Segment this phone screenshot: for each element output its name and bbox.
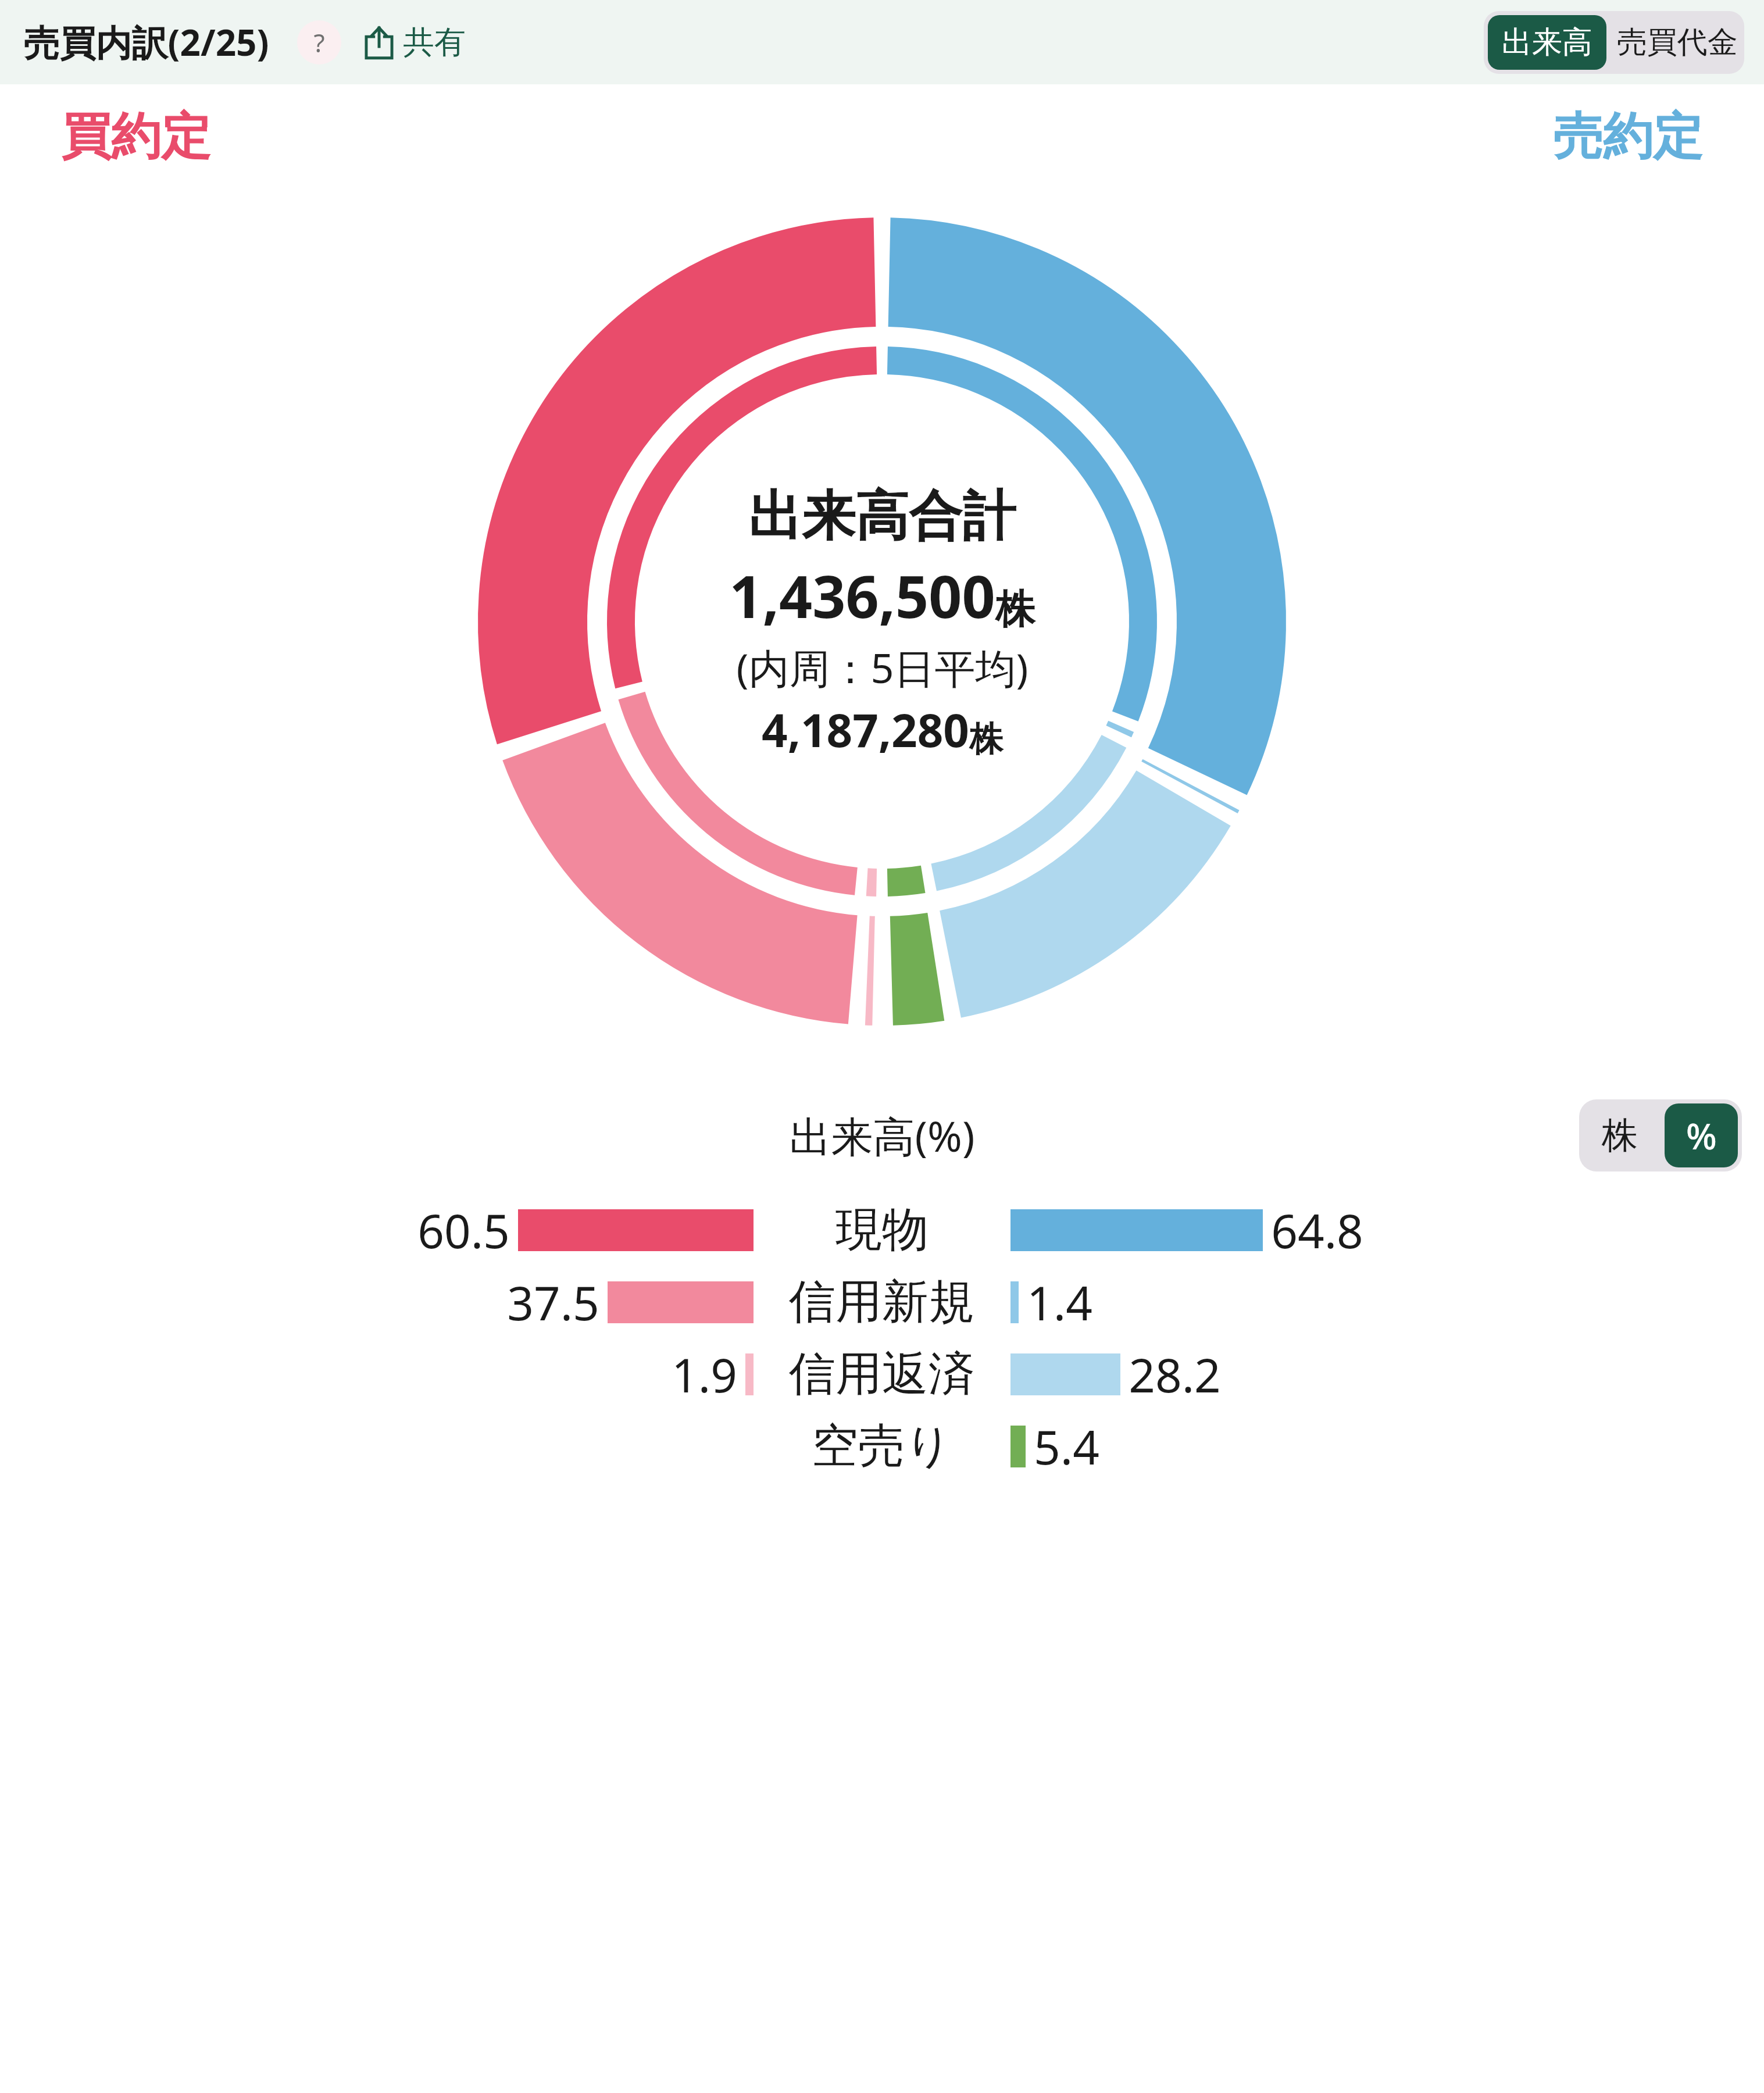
staticText: (内周：5日平均) xyxy=(736,640,1029,695)
staticText: 4,187,280 xyxy=(762,699,969,760)
staticText: 株 xyxy=(969,718,1003,760)
staticText: ? xyxy=(313,25,325,60)
button[interactable]: ヘルプ xyxy=(297,20,341,65)
staticText: 現物 xyxy=(835,1201,929,1259)
staticText: 出来高 xyxy=(1502,23,1592,62)
button[interactable]: 株 xyxy=(1583,1103,1656,1167)
staticText: 株 xyxy=(995,585,1035,635)
staticText: 出来高合計 xyxy=(748,483,1016,550)
staticText: 1.4 xyxy=(1027,1270,1092,1334)
button[interactable]: % xyxy=(1665,1103,1738,1167)
staticText: 空売り xyxy=(812,1417,952,1476)
staticText: 5.4 xyxy=(1034,1415,1099,1478)
staticText: 共有 xyxy=(403,23,466,62)
button[interactable]: 出来高 xyxy=(1488,15,1606,70)
staticText: 1.9 xyxy=(672,1342,737,1406)
staticText: 売買代金 xyxy=(1617,23,1738,62)
button[interactable]: 共有 xyxy=(359,18,469,67)
staticText: 株 xyxy=(1602,1113,1638,1158)
staticText: % xyxy=(1686,1111,1717,1160)
staticText: 60.5 xyxy=(417,1198,510,1262)
staticText: 売買内訳(2/25) xyxy=(23,17,269,67)
staticText: 信用返済 xyxy=(789,1345,975,1403)
staticText: 1,436,500 xyxy=(729,556,995,635)
staticText: 37.5 xyxy=(507,1270,599,1334)
staticText: 64.8 xyxy=(1271,1198,1363,1262)
staticText: 信用新規 xyxy=(789,1273,975,1331)
button[interactable]: 売買代金 xyxy=(1615,15,1740,70)
staticText: 売約定 xyxy=(1553,105,1703,168)
staticText: 28.2 xyxy=(1129,1342,1221,1406)
staticText: 買約定 xyxy=(61,105,211,168)
staticText: 出来高(%) xyxy=(789,1107,975,1164)
